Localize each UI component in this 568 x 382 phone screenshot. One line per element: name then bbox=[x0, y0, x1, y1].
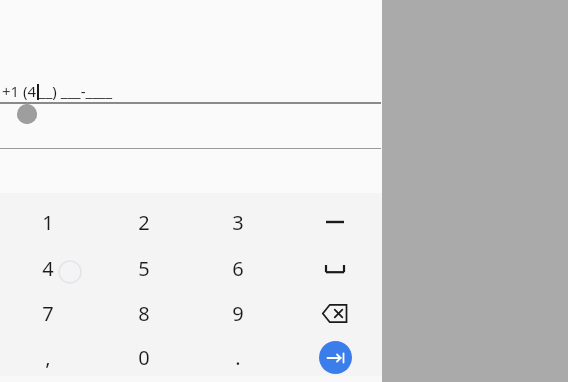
staticText: +1 (4 bbox=[2, 81, 37, 101]
staticText: 9 bbox=[232, 300, 244, 327]
staticText: __) ___-____ bbox=[39, 81, 113, 101]
staticText: 8 bbox=[138, 300, 150, 327]
staticText: 2 bbox=[138, 209, 150, 236]
staticText: 3 bbox=[232, 209, 244, 236]
staticText: 0 bbox=[138, 344, 150, 371]
other: Text selection handle bbox=[17, 103, 37, 125]
button[interactable]: Dash bbox=[305, 199, 365, 245]
staticText: 6 bbox=[232, 255, 244, 282]
button[interactable]: 7 bbox=[1, 290, 95, 336]
button[interactable]: Backspace bbox=[305, 290, 365, 336]
button[interactable]: 6 bbox=[191, 245, 285, 291]
staticText: 5 bbox=[138, 255, 150, 282]
button[interactable]: 0 bbox=[97, 334, 191, 380]
button[interactable]: 4 bbox=[1, 245, 95, 291]
button[interactable]: 1 bbox=[1, 199, 95, 245]
button[interactable]: Space bbox=[305, 245, 365, 291]
button[interactable]: 9 bbox=[191, 290, 285, 336]
button[interactable]: 2 bbox=[97, 199, 191, 245]
button[interactable]: 8 bbox=[97, 290, 191, 336]
staticText: 1 bbox=[42, 209, 54, 236]
button[interactable]: Next bbox=[305, 334, 365, 380]
staticText: 7 bbox=[42, 300, 54, 327]
button[interactable]: . bbox=[191, 334, 285, 380]
button[interactable]: , bbox=[1, 334, 95, 380]
staticText: . bbox=[235, 344, 241, 371]
staticText: , bbox=[45, 344, 51, 371]
button[interactable]: 3 bbox=[191, 199, 285, 245]
button[interactable]: 5 bbox=[97, 245, 191, 291]
staticText: 4 bbox=[42, 255, 54, 282]
